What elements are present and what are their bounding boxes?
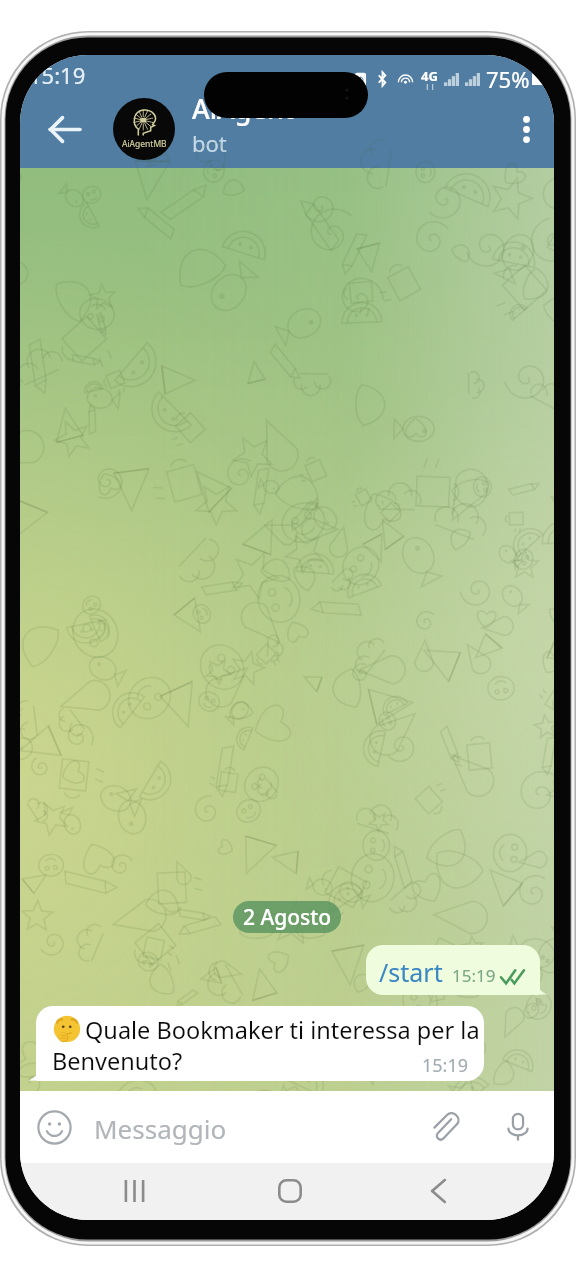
button[interactable]: Back: [418, 1171, 458, 1211]
staticText: Messaggio: [94, 1111, 227, 1146]
button[interactable]: Emoji: [32, 1105, 76, 1149]
staticText: 15:19: [422, 1053, 469, 1078]
staticText: AiAgent: [192, 90, 295, 127]
button[interactable]: 2 Agosto: [233, 901, 341, 933]
button[interactable]: Recent apps: [114, 1171, 154, 1211]
staticText: 15:19: [29, 60, 86, 90]
button[interactable]: Voice message: [496, 1105, 540, 1149]
button[interactable]: Attach: [422, 1105, 466, 1149]
staticText: 2 Agosto: [243, 903, 332, 932]
staticText: Benvenuto?: [52, 1045, 183, 1077]
staticText: 15:19: [452, 964, 496, 987]
button[interactable]: Profile picture: [113, 98, 175, 160]
button[interactable]: Home: [270, 1171, 310, 1211]
staticText: /start: [379, 955, 443, 989]
staticText: 4G: [421, 67, 438, 85]
button[interactable]: Back: [36, 101, 92, 157]
staticText: bot: [192, 128, 227, 158]
staticText: Quale Bookmaker ti interessa per la: [85, 1014, 484, 1046]
staticText: AiAgentMB: [122, 138, 167, 150]
button[interactable]: /start: [366, 945, 540, 995]
button[interactable]: More options: [498, 101, 554, 157]
button[interactable]: Quale Bookmaker ti interessa per la: [36, 1006, 484, 1081]
staticText: 75%: [486, 64, 530, 94]
